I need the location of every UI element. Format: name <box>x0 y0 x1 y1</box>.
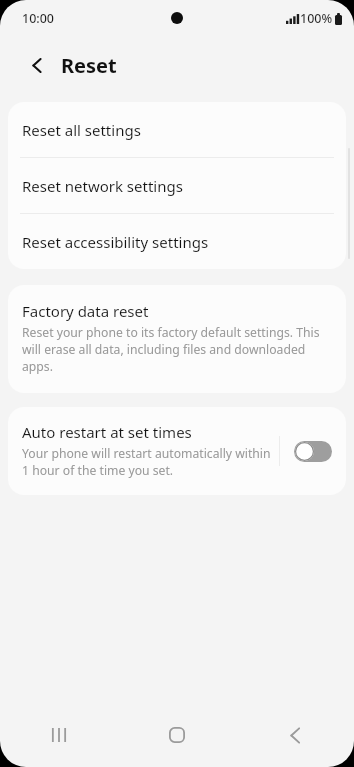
button[interactable]: Reset accessibility settings <box>8 214 346 269</box>
button[interactable]: Auto restart at set times <box>8 407 279 495</box>
staticText: Reset <box>61 52 117 79</box>
staticText: Reset accessibility settings <box>22 232 209 252</box>
button[interactable]: Back <box>236 703 354 767</box>
staticText: Reset all settings <box>22 120 141 140</box>
button[interactable]: Home <box>118 703 236 767</box>
staticText: Factory data reset <box>22 301 149 321</box>
button[interactable]: Recent apps <box>0 703 118 767</box>
button[interactable]: Reset network settings <box>8 158 346 213</box>
staticText: Your phone will restart automatically wi… <box>22 445 271 479</box>
staticText: Reset network settings <box>22 176 183 196</box>
button[interactable]: Auto restart at set times toggle <box>280 425 346 478</box>
staticText: 100% <box>300 10 333 27</box>
staticText: Reset your phone to its factory default … <box>22 324 330 375</box>
staticText: Auto restart at set times <box>22 422 192 442</box>
staticText: 10:00 <box>22 10 55 27</box>
button[interactable]: Back <box>20 48 54 82</box>
button[interactable]: Reset all settings <box>8 102 346 157</box>
button[interactable]: Factory data reset <box>8 285 346 393</box>
